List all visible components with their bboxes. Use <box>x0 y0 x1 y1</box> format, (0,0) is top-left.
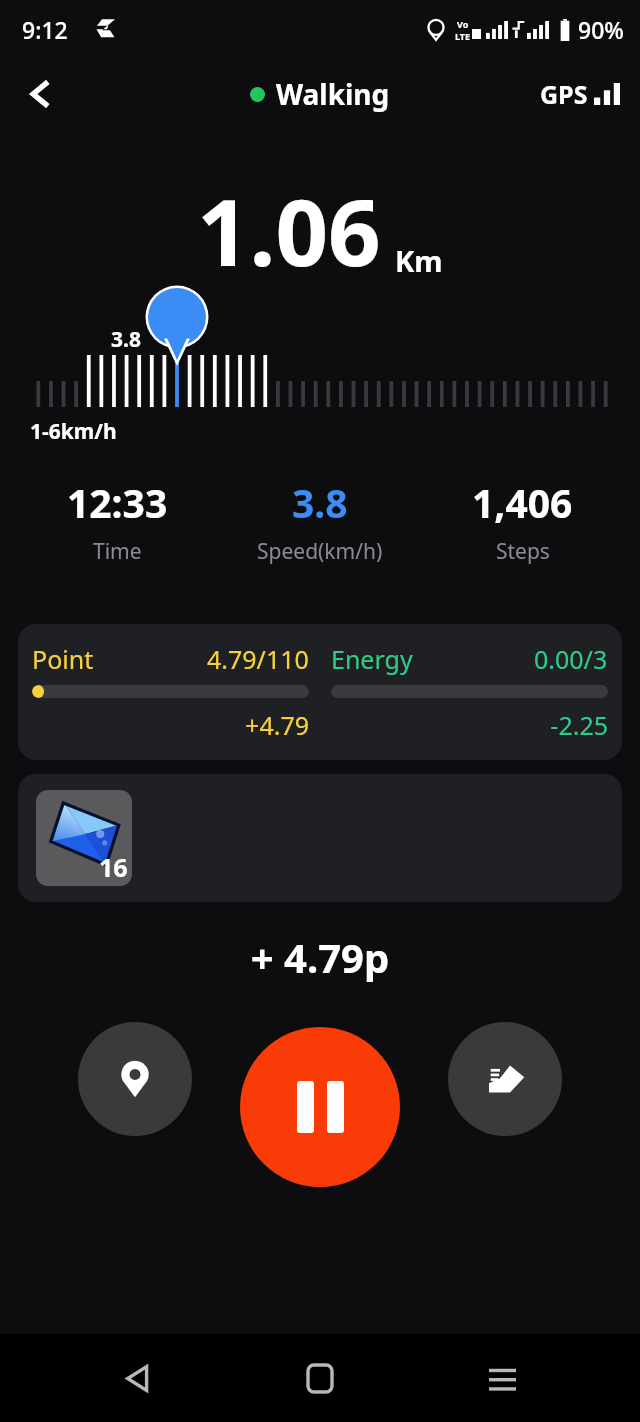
button[interactable]: 3.8 <box>218 476 421 566</box>
staticText: Steps <box>496 537 550 566</box>
staticText: 16 <box>99 850 128 884</box>
staticText: -2.25 <box>331 708 608 742</box>
button[interactable]: 16 <box>18 774 622 902</box>
button[interactable]: Home <box>276 1334 364 1422</box>
staticText: 1,406 <box>472 476 573 529</box>
staticText: 1.06 <box>197 168 381 293</box>
button[interactable]: Back <box>94 1334 182 1422</box>
staticText: 9:12 <box>22 14 68 45</box>
staticText: 4.79/110 <box>207 642 309 676</box>
button[interactable]: Point <box>18 624 622 760</box>
staticText: Km <box>395 241 443 280</box>
button[interactable]: GPS <box>540 77 620 111</box>
staticText: 0.00/3 <box>534 642 608 676</box>
staticText: Vo <box>457 18 469 30</box>
button[interactable]: Activity type <box>448 1022 562 1136</box>
button[interactable]: 12:33 <box>16 476 218 566</box>
staticText: Speed(km/h) <box>257 537 383 566</box>
staticText: Point <box>32 642 94 676</box>
staticText: LTE <box>455 30 471 42</box>
staticText: +4.79 <box>32 708 309 742</box>
button[interactable]: Walking <box>250 75 390 113</box>
staticText: Energy <box>331 642 413 676</box>
staticText: 12:33 <box>67 476 168 529</box>
button[interactable]: Pause <box>240 1027 400 1187</box>
button[interactable]: Location <box>78 1022 192 1136</box>
staticText: 1-6km/h <box>30 417 117 446</box>
staticText: Time <box>93 537 142 566</box>
staticText: Walking <box>276 75 390 113</box>
staticText: + 4.79p <box>0 930 640 984</box>
button[interactable]: Recent apps <box>458 1334 546 1422</box>
staticText: 3.8 <box>292 476 348 529</box>
button[interactable]: 1,406 <box>421 476 624 566</box>
staticText: GPS <box>540 77 588 111</box>
staticText: 90% <box>578 14 624 45</box>
staticText: 3.8 <box>111 325 141 354</box>
button[interactable]: Back <box>12 66 68 122</box>
